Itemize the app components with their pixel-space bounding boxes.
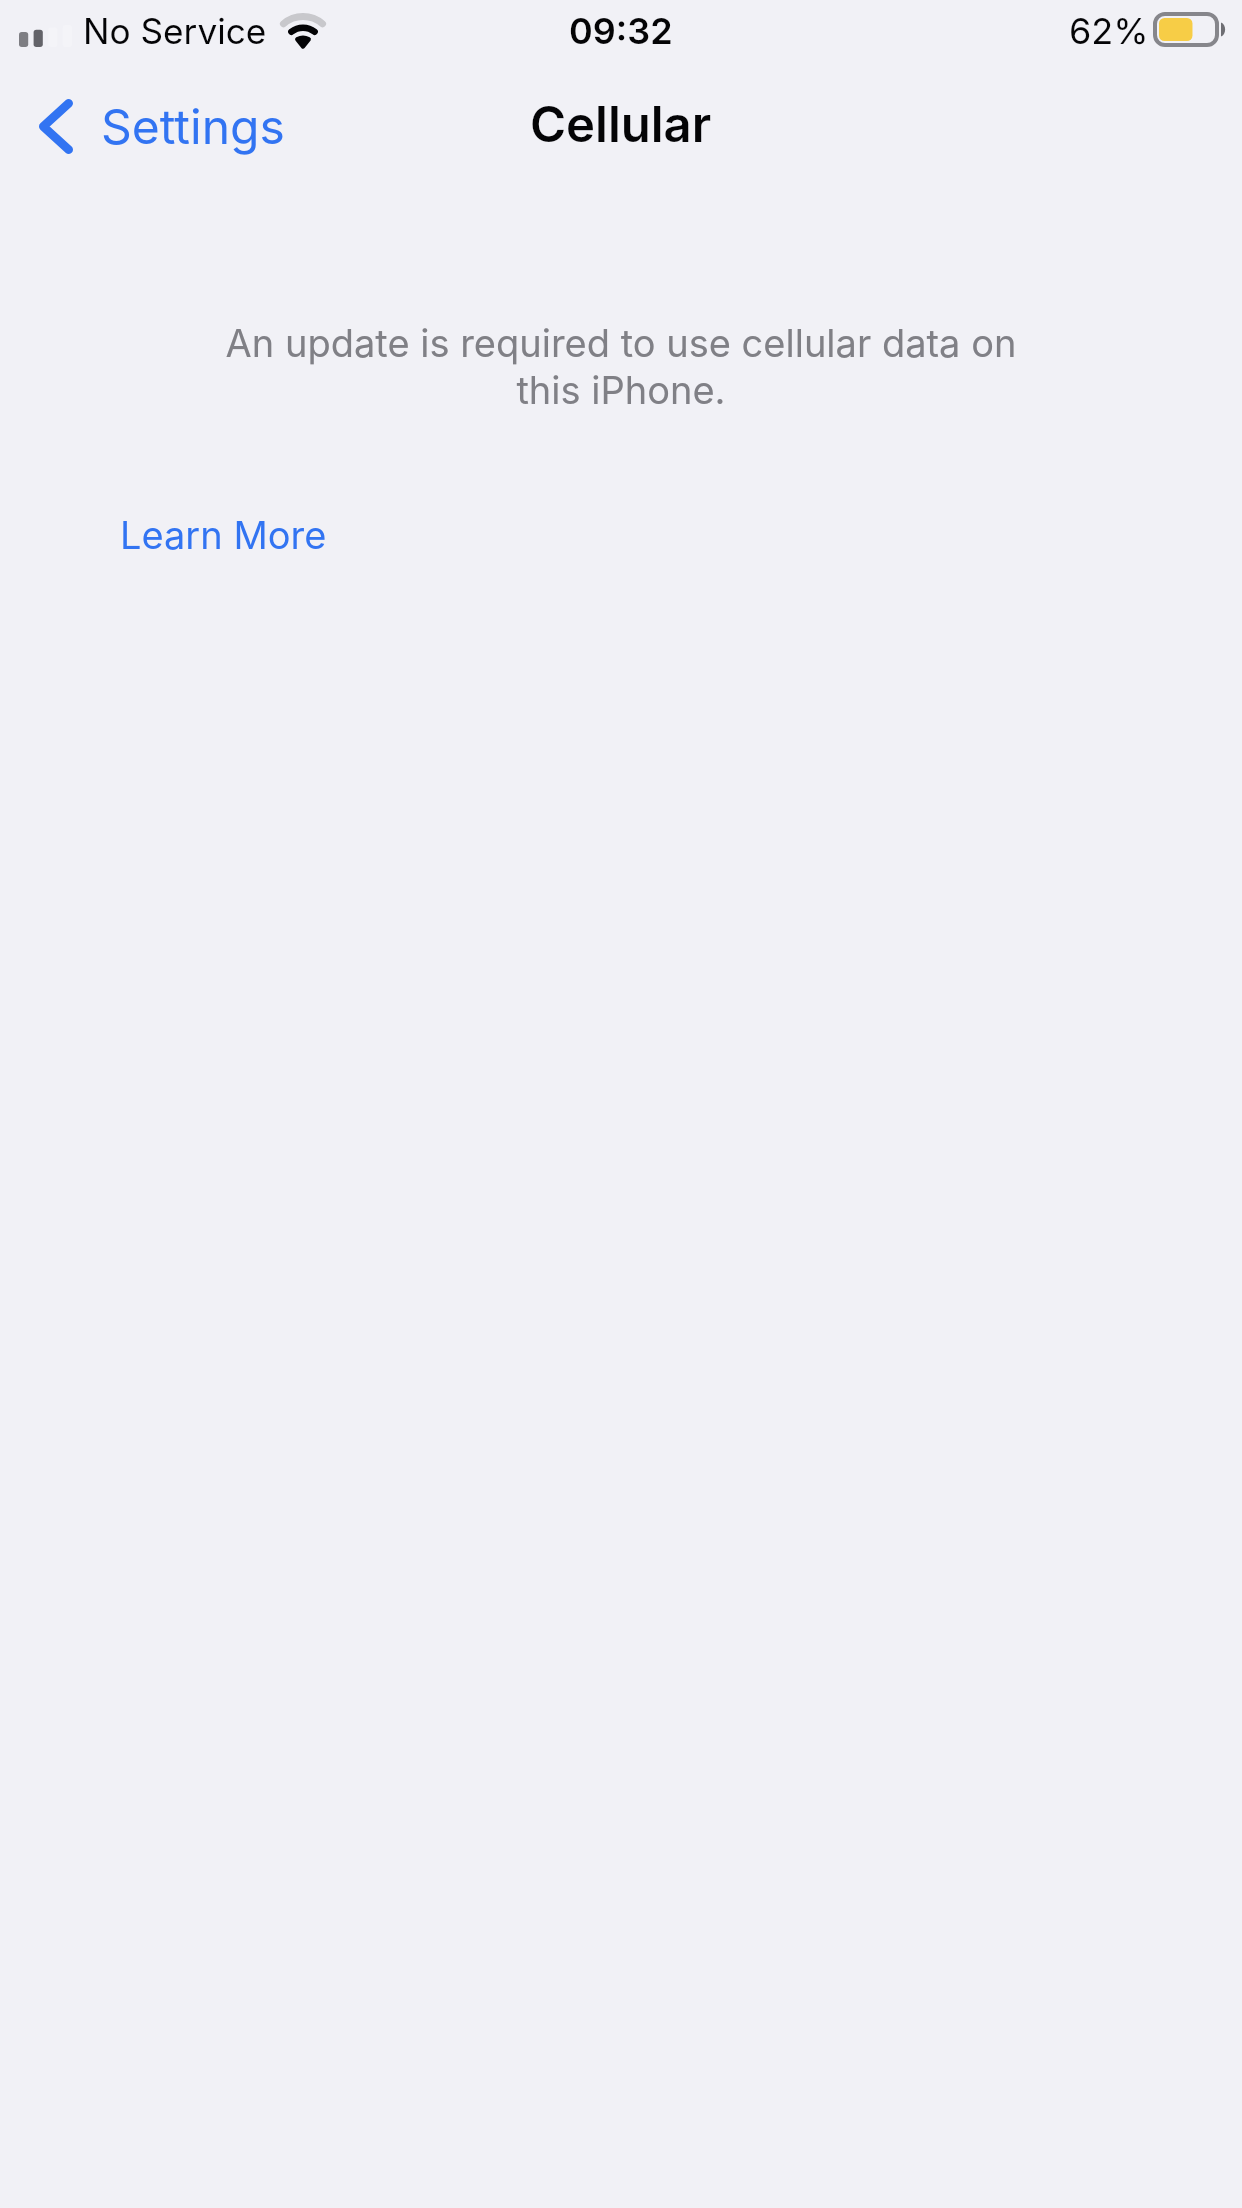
staticText: 62%	[1069, 9, 1149, 53]
staticText: No Service	[83, 10, 267, 53]
staticText: Learn More	[120, 512, 327, 558]
button[interactable]: Settings	[31, 85, 293, 167]
staticText: 09:32	[569, 9, 673, 53]
other: Battery 62 percent	[1153, 12, 1227, 47]
other: Wi-Fi	[278, 10, 330, 50]
staticText: Settings	[101, 97, 285, 155]
button[interactable]: Learn More	[100, 496, 347, 574]
other: Cellular signal strength	[19, 24, 72, 47]
staticText: Cellular	[530, 95, 712, 154]
staticText: An update is required to use cellular da…	[200, 320, 1042, 413]
